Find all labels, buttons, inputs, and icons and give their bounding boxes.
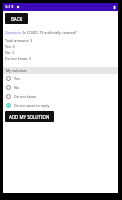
staticText: BACK [11, 16, 23, 22]
other: Battery [112, 5, 117, 10]
staticText: Do not want to reply [14, 103, 50, 108]
staticText: No [14, 85, 20, 90]
staticText: Total amount: 3 [5, 38, 33, 43]
button[interactable]: No [3, 83, 118, 92]
button[interactable]: BACK [5, 13, 28, 24]
staticText: ADD MY SOLUTION [9, 114, 50, 120]
button[interactable]: Do not want to reply [3, 101, 118, 110]
staticText: Question: Is COVID-19 artificially creat… [5, 30, 77, 35]
staticText: Yes [14, 76, 20, 81]
other: Notification [16, 5, 20, 9]
staticText: 3:13 [5, 4, 14, 10]
button[interactable]: Do not know [3, 92, 118, 101]
button[interactable]: ADD MY SOLUTION [5, 111, 54, 122]
staticText: Yes: 0 [5, 44, 15, 49]
staticText: My solution: [6, 68, 28, 73]
staticText: Do not know [14, 94, 36, 99]
button[interactable]: Yes [3, 74, 118, 83]
staticText: Do not know: 0 [5, 56, 32, 61]
staticText: No: 3 [5, 50, 15, 55]
